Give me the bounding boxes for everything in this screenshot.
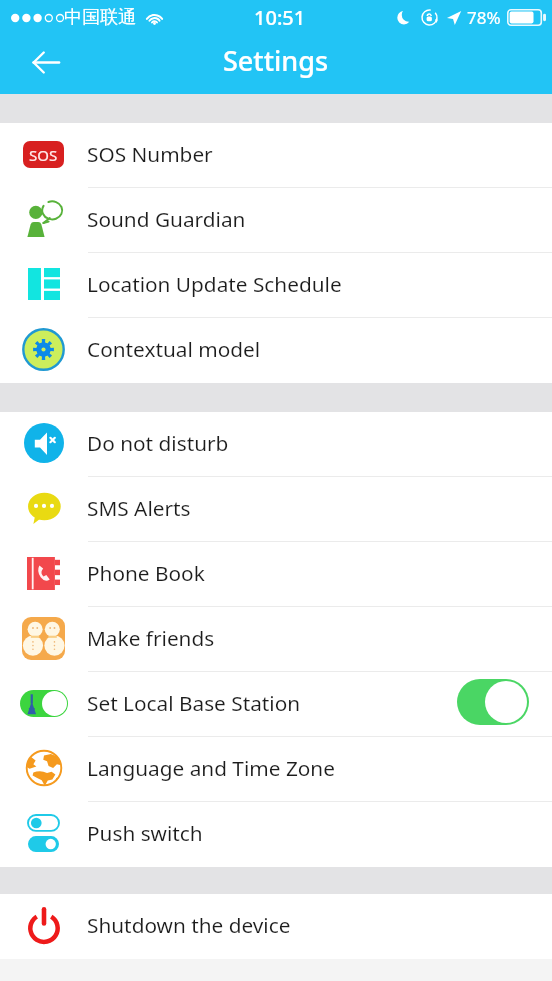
button[interactable]: Location Update Schedule	[0, 253, 552, 318]
staticText: Make friends	[87, 624, 215, 652]
button[interactable]: Set Local Base Station	[0, 672, 552, 737]
staticText: SMS Alerts	[87, 494, 191, 522]
button[interactable]: Back	[19, 36, 71, 88]
staticText: 78%	[467, 6, 501, 29]
staticText: SOS	[29, 145, 58, 165]
button[interactable]: Language and Time Zone	[0, 737, 552, 802]
button[interactable]: Push switch	[0, 802, 552, 867]
button[interactable]: SOS	[0, 123, 552, 188]
button[interactable]: Do not disturb	[0, 412, 552, 477]
staticText: Do not disturb	[87, 429, 229, 457]
staticText: Phone Book	[87, 559, 205, 587]
button[interactable]	[457, 679, 529, 725]
staticText: 中国联通	[64, 6, 136, 29]
button[interactable]: Sound Guardian	[0, 188, 552, 253]
button[interactable]: Phone Book	[0, 542, 552, 607]
staticText: 10:51	[254, 4, 306, 31]
button[interactable]: Contextual model	[0, 318, 552, 383]
button[interactable]: SMS Alerts	[0, 477, 552, 542]
staticText: Location Update Schedule	[87, 270, 342, 298]
staticText: SOS Number	[87, 140, 213, 168]
staticText: Contextual model	[87, 335, 261, 363]
button[interactable]: Shutdown the device	[0, 894, 552, 959]
staticText: Settings	[223, 42, 329, 79]
staticText: Sound Guardian	[87, 205, 246, 233]
staticText: Push switch	[87, 819, 203, 847]
staticText: Shutdown the device	[87, 911, 291, 939]
staticText: Language and Time Zone	[87, 754, 335, 782]
button[interactable]: Make friends	[0, 607, 552, 672]
staticText: Set Local Base Station	[87, 689, 301, 717]
